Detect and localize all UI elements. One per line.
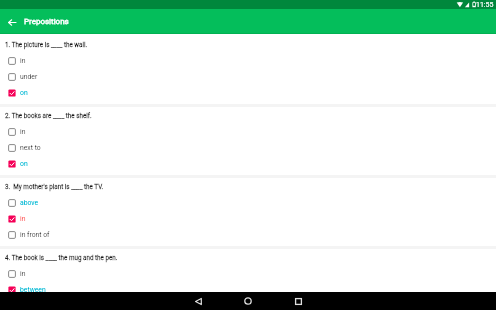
button[interactable]: above: [0, 195, 496, 211]
button[interactable]: in: [0, 211, 496, 227]
button[interactable]: Home: [230, 292, 266, 310]
staticText: in: [20, 57, 26, 65]
button[interactable]: between: [0, 282, 496, 298]
staticText: in: [20, 270, 26, 278]
staticText: 11:55: [476, 1, 494, 9]
staticText: 2. The books are ____ the shelf.: [5, 112, 92, 119]
button[interactable]: in: [0, 53, 496, 69]
button[interactable]: Navigate up: [0, 10, 24, 34]
staticText: 1. The picture is ____ the wall.: [5, 41, 88, 48]
button[interactable]: on: [0, 85, 496, 101]
staticText: under: [20, 73, 38, 81]
staticText: in front of: [20, 231, 50, 239]
staticText: above: [20, 199, 39, 207]
staticText: on: [20, 89, 28, 97]
button[interactable]: Recent apps: [280, 292, 316, 310]
button[interactable]: in: [0, 266, 496, 282]
staticText: next to: [20, 144, 41, 152]
button[interactable]: in front of: [0, 227, 496, 243]
button[interactable]: Back: [180, 292, 216, 310]
button[interactable]: in: [0, 124, 496, 140]
staticText: in: [20, 215, 26, 223]
staticText: in: [20, 128, 26, 136]
button[interactable]: on: [0, 156, 496, 172]
staticText: on: [20, 160, 28, 168]
staticText: between: [20, 286, 46, 294]
staticText: 3. My mother's plant is ____ the TV.: [5, 183, 104, 190]
staticText: 4. The book is ____ the mug and the pen.: [5, 254, 118, 261]
staticText: Prepositions: [24, 17, 69, 26]
button[interactable]: under: [0, 69, 496, 85]
button[interactable]: next to: [0, 140, 496, 156]
